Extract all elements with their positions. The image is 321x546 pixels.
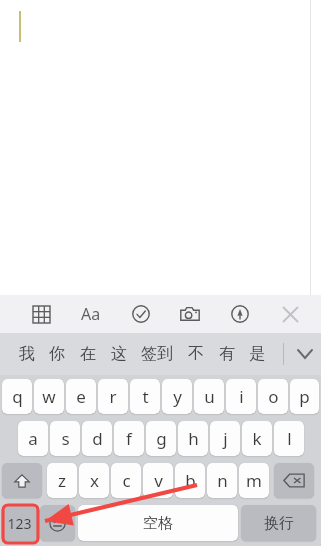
staticText: 在 [80,344,96,364]
staticText: j [223,427,228,450]
button[interactable]: z [47,463,77,498]
staticText: k [252,427,262,450]
staticText: v [154,469,163,492]
button[interactable]: q [2,379,32,414]
button[interactable]: n [207,463,237,498]
button[interactable]: 有 [219,333,235,375]
staticText: q [12,385,23,408]
button[interactable]: Handwriting [225,299,255,329]
staticText: o [268,385,279,408]
button[interactable]: p [290,379,319,414]
staticText: s [61,427,70,450]
button[interactable]: 换行 [241,505,316,541]
button[interactable]: y [162,379,192,414]
button[interactable]: f [114,421,144,456]
staticText: l [287,427,292,450]
staticText: 123 [7,514,32,533]
button[interactable]: a [18,421,48,456]
button[interactable]: 这 [111,333,127,375]
staticText: 你 [49,344,65,364]
button[interactable]: s [50,421,80,456]
button[interactable]: l [274,421,304,456]
button[interactable]: Backspace [274,463,314,498]
staticText: g [156,427,167,450]
button[interactable]: d [82,421,112,456]
staticText: a [28,427,38,450]
staticText: 有 [219,344,235,364]
staticText: h [188,427,199,450]
button[interactable]: j [210,421,240,456]
staticText: b [185,469,196,492]
button[interactable]: h [178,421,208,456]
button[interactable]: t [130,379,160,414]
button[interactable]: g [146,421,176,456]
staticText: t [142,385,149,408]
staticText: r [109,385,117,408]
staticText: 签到 [141,344,173,364]
button[interactable]: 你 [49,333,65,375]
button[interactable]: k [242,421,272,456]
staticText: w [42,385,56,408]
button[interactable]: Shift [2,463,42,498]
button[interactable]: 签到 [141,333,173,375]
button[interactable]: Aa [76,299,106,329]
button[interactable]: Table [26,299,56,329]
button[interactable]: Expand candidates [288,333,321,375]
button[interactable]: r [98,379,128,414]
button[interactable]: b [175,463,205,498]
button[interactable]: u [194,379,224,414]
staticText: c [122,469,131,492]
staticText: x [90,469,99,492]
staticText: f [126,427,132,450]
button[interactable]: c [111,463,141,498]
staticText: z [58,469,66,492]
staticText: 这 [111,344,127,364]
button[interactable]: 我 [19,333,35,375]
button[interactable]: w [34,379,64,414]
button[interactable]: Emoji [40,505,75,541]
button[interactable]: x [79,463,109,498]
staticText: 不 [188,344,204,364]
staticText: Aa [81,303,101,325]
staticText: i [239,385,244,408]
staticText: 空格 [143,514,173,533]
button[interactable]: 在 [80,333,96,375]
button[interactable]: Close [275,299,305,329]
staticText: d [92,427,103,450]
staticText: m [246,469,262,492]
button[interactable]: 空格 [78,505,238,541]
button[interactable]: 不 [188,333,204,375]
button[interactable]: Confirm [126,299,156,329]
button[interactable]: m [239,463,269,498]
staticText: u [204,385,215,408]
button[interactable]: o [258,379,288,414]
staticText: y [173,385,182,408]
staticText: p [299,385,310,408]
button[interactable]: i [226,379,256,414]
staticText: e [76,385,86,408]
button[interactable]: 是 [249,333,265,375]
button[interactable]: 123 [2,505,37,541]
staticText: 换行 [264,514,294,533]
staticText: 是 [249,344,265,364]
button[interactable]: Camera [175,299,205,329]
button[interactable]: v [143,463,173,498]
staticText: 我 [19,344,35,364]
button[interactable]: e [66,379,96,414]
staticText: n [217,469,228,492]
